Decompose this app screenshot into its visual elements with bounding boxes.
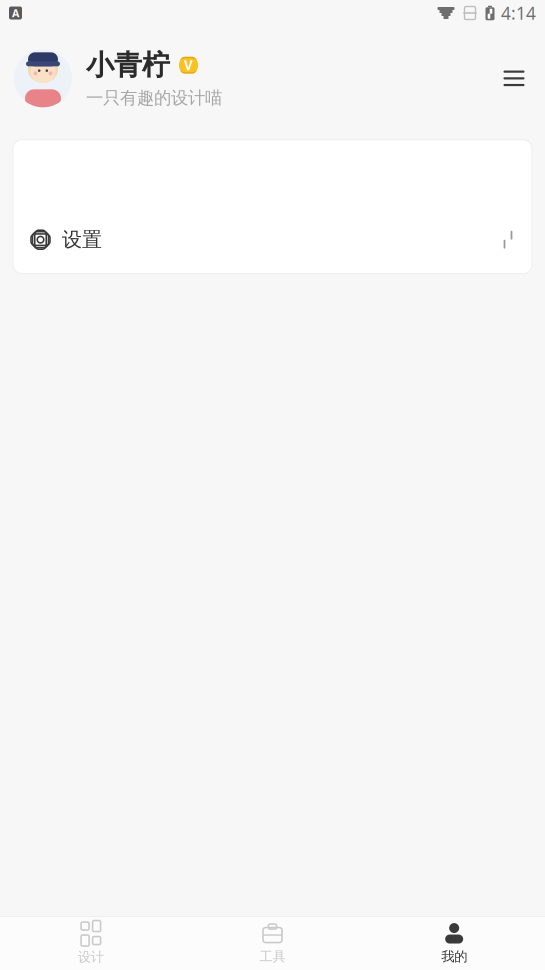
button[interactable]: 工具 <box>182 917 363 970</box>
staticText: 4:14 <box>501 1 536 24</box>
staticText: 设置 <box>62 227 102 252</box>
staticText: 一只有趣的设计喵 <box>86 87 222 109</box>
staticText: 我的 <box>441 948 467 965</box>
staticText: 工具 <box>259 948 285 965</box>
staticText: 设计 <box>78 949 104 965</box>
button[interactable]: 设置 <box>13 214 532 266</box>
staticText: A <box>12 6 19 20</box>
staticText: 小青柠 <box>86 48 170 82</box>
button[interactable]: 设计 <box>0 917 182 970</box>
button[interactable]: 小青柠 <box>14 48 222 109</box>
button[interactable]: 我的 <box>363 917 545 970</box>
button[interactable]: 菜单 <box>497 61 531 95</box>
staticText: V <box>184 56 193 74</box>
